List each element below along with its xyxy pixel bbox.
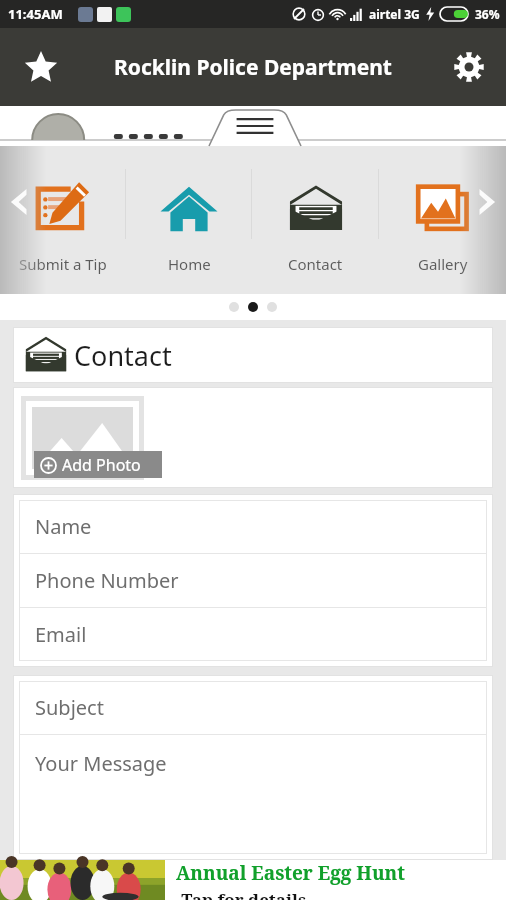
staticText: 11:45AM — [8, 5, 63, 23]
button[interactable]: Favorites — [18, 44, 64, 90]
staticText: Contact — [288, 254, 343, 274]
button[interactable]: Next — [466, 182, 506, 222]
button[interactable]: Name — [19, 500, 487, 553]
button[interactable]: Page — [248, 302, 258, 312]
staticText: Subject — [35, 694, 104, 721]
button[interactable]: Add Photo — [21, 396, 144, 480]
button[interactable]: Annual Easter Egg Hunt — [0, 860, 506, 900]
staticText: airtel 3G — [369, 6, 420, 22]
staticText: Your Message — [35, 750, 167, 777]
staticText: Home — [168, 254, 211, 274]
button[interactable]: Add Photo — [34, 451, 162, 478]
button[interactable]: Home — [126, 146, 252, 294]
button[interactable]: Menu — [209, 106, 301, 146]
staticText: -Tap for details- — [176, 888, 312, 900]
button[interactable]: Your Message — [35, 750, 487, 777]
button[interactable]: Page — [267, 302, 277, 312]
button[interactable]: Contact — [13, 327, 493, 383]
staticText: Add Photo — [62, 454, 141, 476]
staticText: Rocklin Police Department — [114, 53, 392, 82]
staticText: Phone Number — [35, 567, 179, 594]
button[interactable]: Phone Number — [19, 554, 487, 607]
staticText: Email — [35, 621, 87, 648]
staticText: Contact — [74, 337, 172, 374]
staticText: Name — [35, 513, 92, 540]
button[interactable]: Settings — [446, 44, 492, 90]
button[interactable]: Page — [229, 302, 239, 312]
staticText: Submit a Tip — [19, 254, 107, 274]
button[interactable]: Contact — [252, 146, 379, 294]
staticText: Annual Easter Egg Hunt — [176, 860, 405, 886]
button[interactable]: Subject — [19, 681, 487, 734]
button[interactable]: Email — [19, 608, 487, 661]
staticText: 36% — [475, 6, 500, 22]
staticText: Gallery — [418, 254, 468, 274]
button[interactable]: Gallery — [379, 146, 506, 294]
button[interactable]: Submit a Tip — [0, 146, 126, 294]
button[interactable]: Previous — [0, 182, 40, 222]
